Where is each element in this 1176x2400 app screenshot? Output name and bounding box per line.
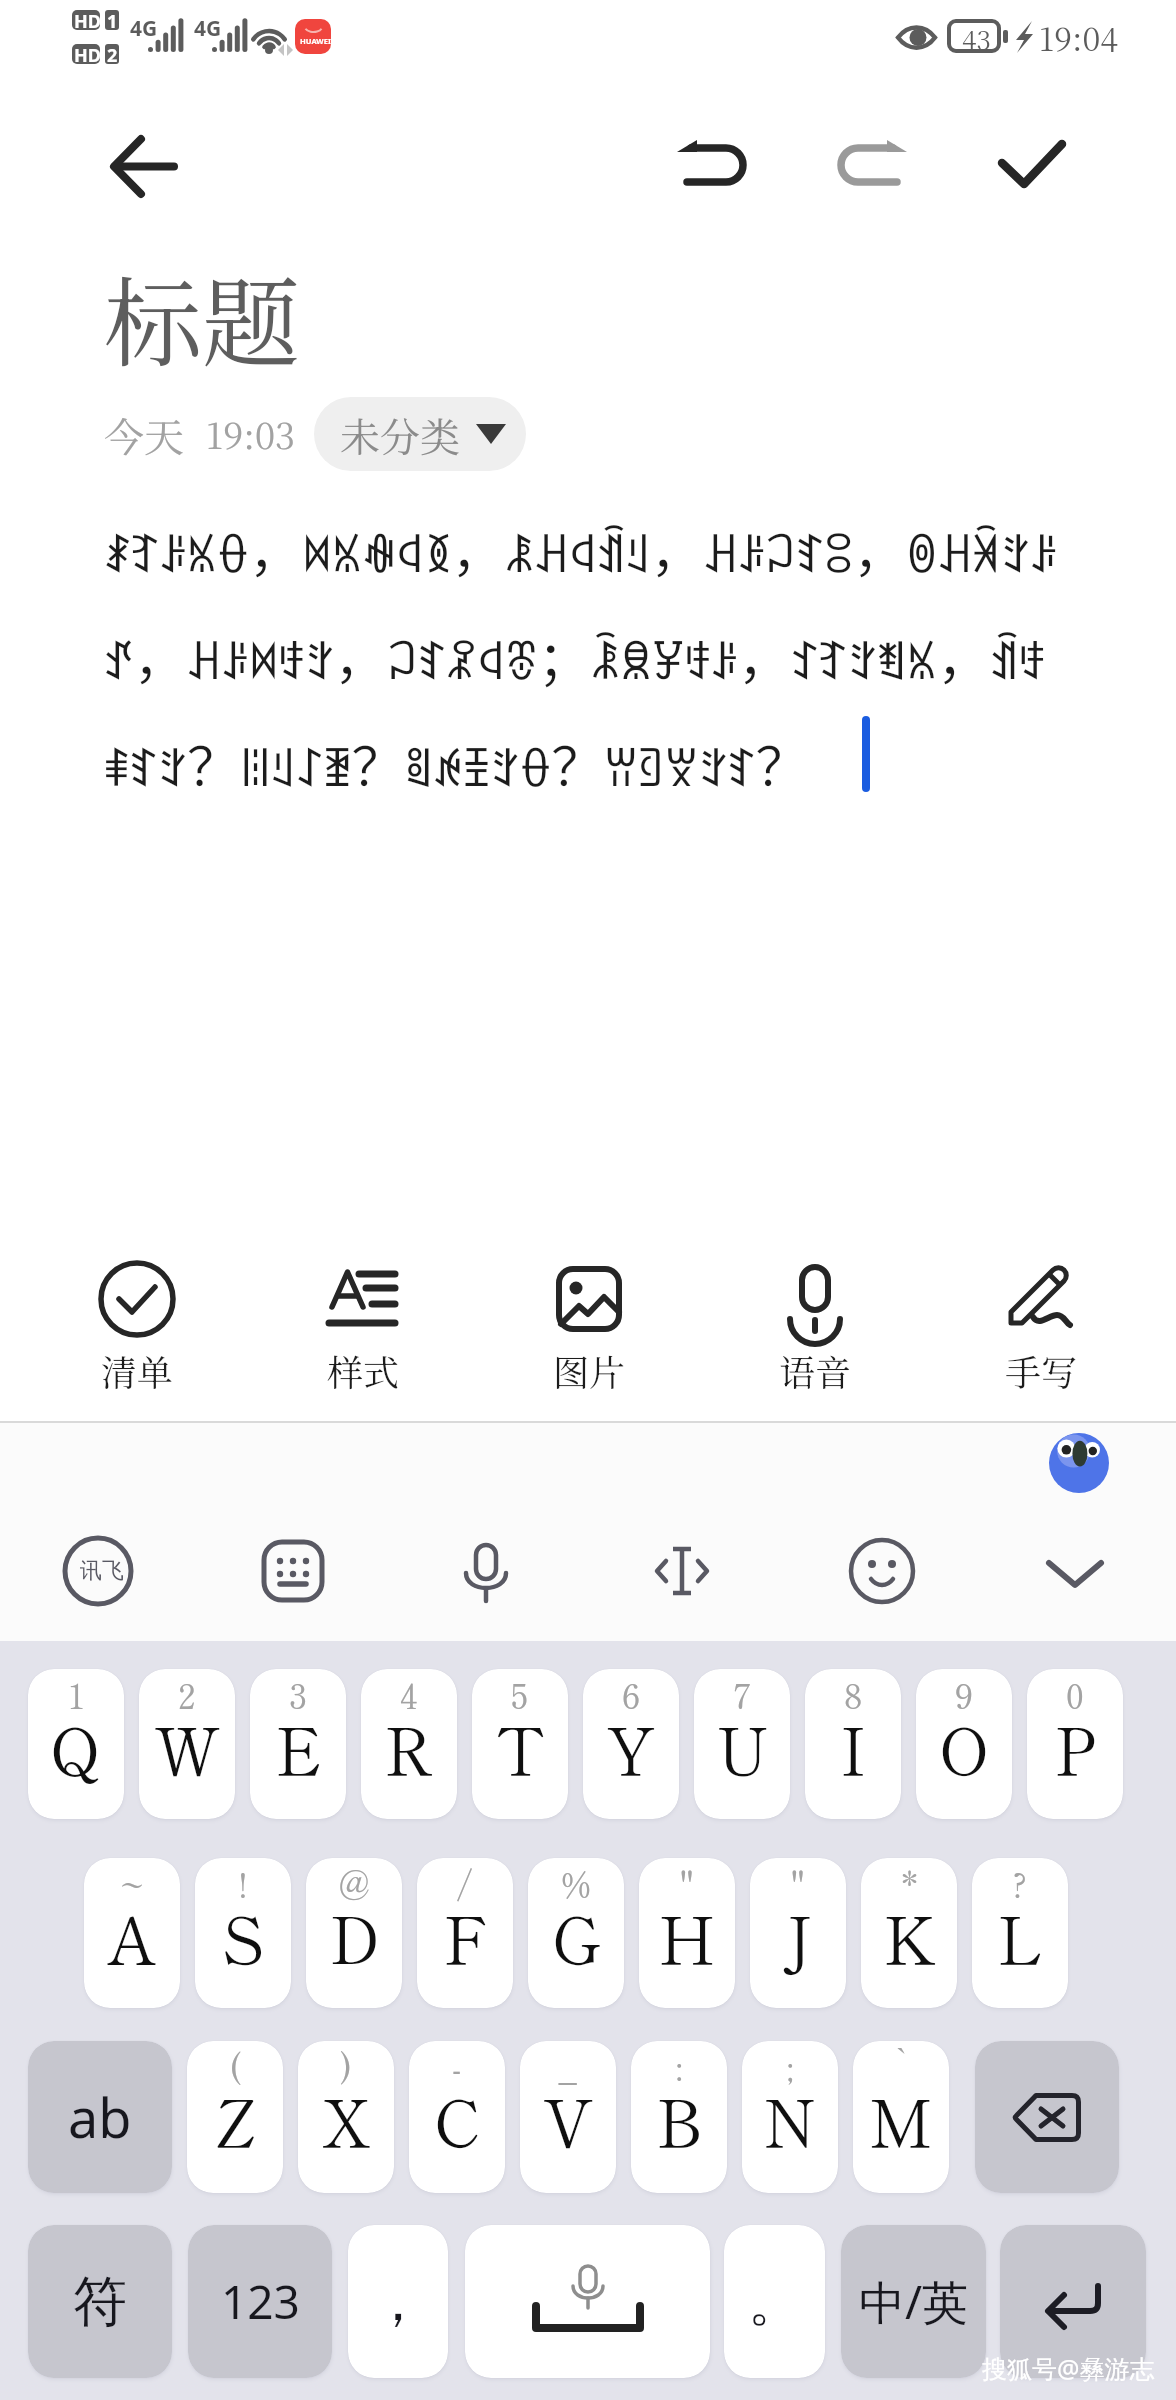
staticText: 0 [1066, 1670, 1084, 1719]
staticText: 6 [622, 1670, 641, 1719]
button[interactable]: 2 [139, 1669, 235, 1819]
staticText: L [997, 1890, 1044, 1984]
staticText: HD [74, 9, 101, 34]
button[interactable]: Input method [46, 1519, 150, 1623]
staticText: 43 [962, 20, 991, 57]
staticText: 123 [221, 2270, 300, 2333]
staticText: 样式 [327, 1345, 400, 1397]
button[interactable]: * [861, 1858, 957, 2008]
button[interactable]: del [975, 2041, 1119, 2193]
button[interactable]: Done [984, 116, 1080, 212]
button[interactable]: 4 [361, 1669, 457, 1819]
staticText: E [275, 1701, 322, 1795]
button[interactable]: 中/英 [841, 2225, 986, 2378]
staticText: B [656, 2073, 703, 2167]
button[interactable]: 1 [28, 1669, 124, 1819]
button[interactable]: 3 [250, 1669, 346, 1819]
button[interactable]: ? [972, 1858, 1068, 2008]
staticText: Z [216, 2073, 255, 2167]
button[interactable]: 8 [805, 1669, 901, 1819]
staticText: _ [557, 2042, 579, 2091]
button[interactable]: Assistant [1049, 1433, 1109, 1493]
button[interactable]: Emoji [830, 1519, 934, 1623]
staticText: 1 [107, 9, 118, 34]
button[interactable]: 手写 [951, 1227, 1131, 1407]
staticText: 符 [73, 2268, 127, 2336]
staticText: U [716, 1701, 769, 1795]
button[interactable]: ; [742, 2041, 838, 2193]
staticText: J [784, 1890, 813, 1984]
button[interactable]: Undo [664, 117, 760, 213]
staticText: V [543, 2073, 593, 2167]
staticText: ) [340, 2042, 353, 2091]
staticText: 4G [130, 14, 158, 43]
button[interactable]: 0 [1027, 1669, 1123, 1819]
button[interactable]: 。 [724, 2225, 825, 2378]
button[interactable]: - [409, 2041, 505, 2193]
button[interactable]: ` [853, 2041, 949, 2193]
staticText: P [1054, 1701, 1097, 1795]
button[interactable]: 9 [916, 1669, 1012, 1819]
staticText: 2 [178, 1670, 196, 1719]
button[interactable]: Back [96, 118, 192, 214]
staticText: A [107, 1890, 157, 1984]
staticText: 搜狐号@彝游志 [982, 2351, 1155, 2385]
button[interactable]: / [417, 1858, 513, 2008]
button[interactable]: 5 [472, 1669, 568, 1819]
staticText: O [939, 1701, 990, 1795]
button[interactable]: 图片 [499, 1227, 679, 1407]
staticText: D [329, 1890, 380, 1984]
staticText: 3 [289, 1670, 307, 1719]
button[interactable]: space [465, 2225, 710, 2378]
staticText: 5 [511, 1670, 529, 1719]
button[interactable]: " [750, 1858, 846, 2008]
button[interactable]: ( [187, 2041, 283, 2193]
staticText: 中/英 [859, 2270, 969, 2333]
button[interactable]: @ [306, 1858, 402, 2008]
staticText: : [675, 2042, 683, 2091]
button[interactable]: 语音 [725, 1227, 905, 1407]
staticText: 4G [194, 14, 222, 43]
button[interactable]: ， [348, 2225, 448, 2378]
staticText: X [322, 2073, 371, 2167]
staticText: 8 [844, 1670, 863, 1719]
staticText: H [658, 1890, 716, 1984]
staticText: W [154, 1701, 221, 1795]
button[interactable]: 7 [694, 1669, 790, 1819]
button[interactable]: Keyboard [241, 1519, 345, 1623]
button[interactable]: ~ [84, 1858, 180, 2008]
button[interactable]: 清单 [47, 1227, 227, 1407]
staticText: ( [229, 2042, 242, 2091]
button[interactable]: Voice input [434, 1519, 538, 1623]
button[interactable]: Hide keyboard [1023, 1519, 1127, 1623]
staticText: I [840, 1701, 867, 1795]
staticText: ꑴꆈꌠꁱꂷ，ꉙꁱꊿꒉꅉ，ꂿꃅꒉꀉꆹ，ꃅꌠꃀꆏꈯ，ꉻꃅꈀꇬꌠ ꀋ，ꃅꌠꉙꄜꇬ，ꃀꆏ… [104, 515, 1058, 802]
staticText: 2 [107, 43, 118, 68]
button[interactable]: ) [298, 2041, 394, 2193]
button[interactable]: % [528, 1858, 624, 2008]
staticText: 标题 [104, 246, 301, 387]
staticText: 未分类 [340, 406, 460, 463]
staticText: " [791, 1859, 805, 1908]
staticText: 手写 [1005, 1345, 1078, 1397]
staticText: / [457, 1859, 473, 1908]
button[interactable]: 123 [188, 2225, 332, 2378]
button[interactable]: " [639, 1858, 735, 2008]
staticText: ~ [120, 1859, 144, 1908]
button[interactable]: Move cursor [630, 1519, 734, 1623]
button[interactable]: _ [520, 2041, 616, 2193]
staticText: 清单 [101, 1345, 174, 1397]
button[interactable]: Redo [824, 117, 920, 213]
button[interactable]: 符 [28, 2225, 172, 2378]
staticText: 图片 [553, 1345, 626, 1397]
staticText: 。 [748, 2268, 802, 2336]
button[interactable]: 未分类 [314, 397, 526, 471]
button[interactable]: ! [195, 1858, 291, 2008]
button[interactable]: : [631, 2041, 727, 2193]
button[interactable]: enter [1000, 2225, 1146, 2378]
staticText: C [434, 2073, 481, 2167]
button[interactable]: ab [28, 2041, 172, 2193]
staticText: HD [74, 43, 101, 68]
button[interactable]: 6 [583, 1669, 679, 1819]
button[interactable]: 样式 [273, 1227, 453, 1407]
